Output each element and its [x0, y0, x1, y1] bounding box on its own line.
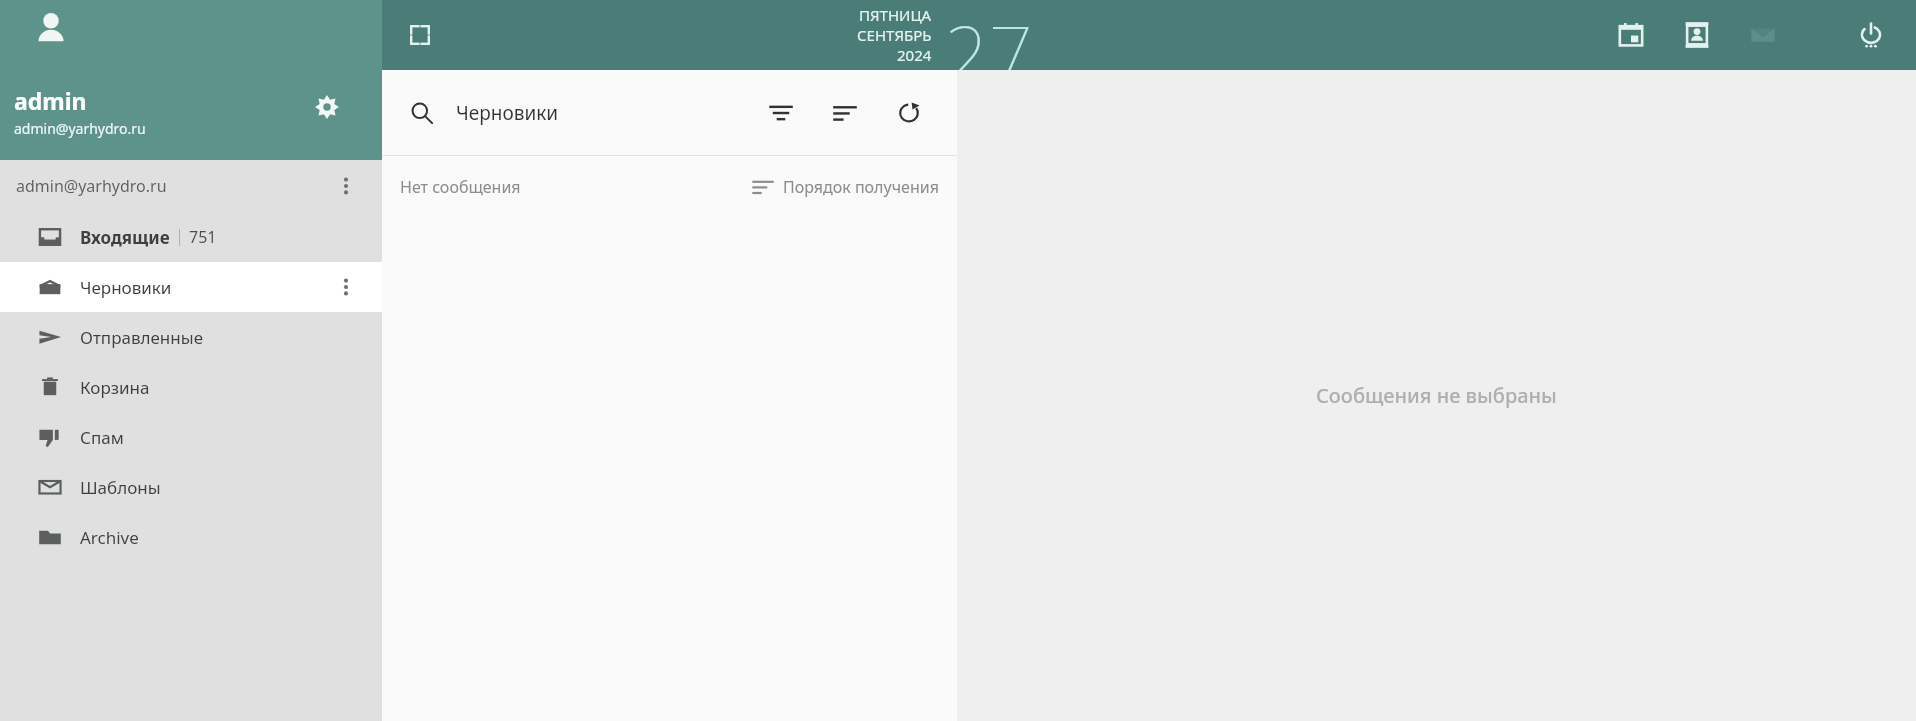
button[interactable]: Поиск: [400, 91, 444, 135]
button[interactable]: Настройки: [310, 90, 344, 124]
button[interactable]: Archive: [0, 512, 382, 562]
staticText: 751: [189, 226, 217, 248]
staticText: admin: [14, 85, 87, 116]
staticText: ПЯТНИЦА: [859, 5, 932, 25]
staticText: Черновики: [456, 100, 559, 126]
button[interactable]: Почта: [1740, 12, 1786, 58]
button[interactable]: Порядок получения: [753, 176, 939, 198]
staticText: admin@yarhydro.ru: [16, 175, 167, 197]
staticText: Archive: [80, 526, 139, 549]
button[interactable]: admin@yarhydro.ru: [0, 160, 382, 212]
staticText: admin@yarhydro.ru: [14, 119, 146, 138]
button[interactable]: Отправленные: [0, 312, 382, 362]
button[interactable]: Входящие: [0, 212, 382, 262]
staticText: Отправленные: [80, 326, 204, 349]
staticText: Порядок получения: [783, 176, 939, 198]
staticText: Входящие: [80, 226, 170, 249]
button[interactable]: Шаблоны: [0, 462, 382, 512]
staticText: Сообщения не выбраны: [1316, 382, 1557, 409]
button[interactable]: Корзина: [0, 362, 382, 412]
staticText: 27: [944, 0, 1033, 70]
staticText: Черновики: [80, 276, 172, 299]
staticText: 2024: [897, 45, 932, 65]
button[interactable]: Черновики: [0, 262, 382, 312]
staticText: Шаблоны: [80, 476, 161, 499]
staticText: Корзина: [80, 376, 150, 399]
staticText: Нет сообщения: [400, 176, 521, 198]
button[interactable]: Спам: [0, 412, 382, 462]
button[interactable]: Сортировка: [823, 91, 867, 135]
button[interactable]: Календарь: [1608, 12, 1654, 58]
staticText: Спам: [80, 426, 124, 449]
button[interactable]: Фильтр: [759, 91, 803, 135]
button[interactable]: Контакты: [1674, 12, 1720, 58]
button[interactable]: Выход: [1848, 12, 1894, 58]
button[interactable]: Обновить: [887, 91, 931, 135]
staticText: СЕНТЯБРЬ: [857, 25, 932, 45]
button[interactable]: Развернуть: [399, 14, 441, 56]
